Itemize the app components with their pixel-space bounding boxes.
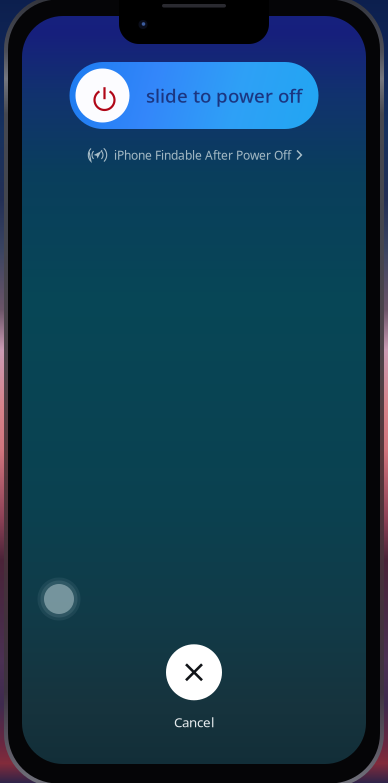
staticText: slide to power off bbox=[146, 83, 302, 108]
button[interactable]: AssistiveTouch bbox=[36, 576, 82, 622]
button[interactable]: Cancel bbox=[166, 644, 222, 731]
staticText: Cancel bbox=[174, 713, 214, 731]
button[interactable]: iPhone Findable After Power Off bbox=[86, 145, 302, 165]
staticText: iPhone Findable After Power Off bbox=[114, 147, 291, 163]
button[interactable]: slide to power off bbox=[69, 62, 318, 129]
